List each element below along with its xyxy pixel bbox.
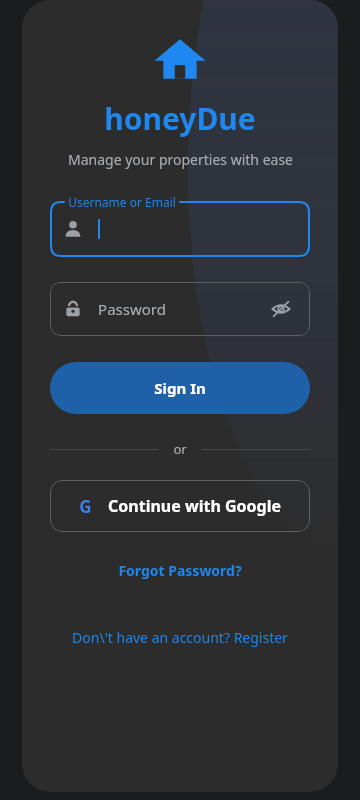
button[interactable]: Don\'t have an account? Register xyxy=(58,622,302,653)
staticText: Password xyxy=(98,299,166,319)
staticText: G xyxy=(79,495,92,518)
staticText: Manage your properties with ease xyxy=(68,150,293,169)
other: honeyDue logo xyxy=(154,34,206,86)
staticText: Continue with Google xyxy=(108,495,281,517)
staticText: Sign In xyxy=(154,378,206,398)
staticText: Don\'t have an account? Register xyxy=(72,628,288,647)
button[interactable]: Show password xyxy=(266,294,296,324)
staticText: Username or Email xyxy=(68,194,176,210)
staticText: or xyxy=(173,440,187,458)
button[interactable]: Password xyxy=(50,282,310,336)
button[interactable]: G xyxy=(50,480,310,532)
button[interactable] xyxy=(50,201,310,257)
staticText: honeyDue xyxy=(104,98,256,139)
staticText: Forgot Password? xyxy=(118,561,242,580)
button[interactable]: Sign In xyxy=(50,362,310,414)
button[interactable]: Forgot Password? xyxy=(104,555,256,586)
